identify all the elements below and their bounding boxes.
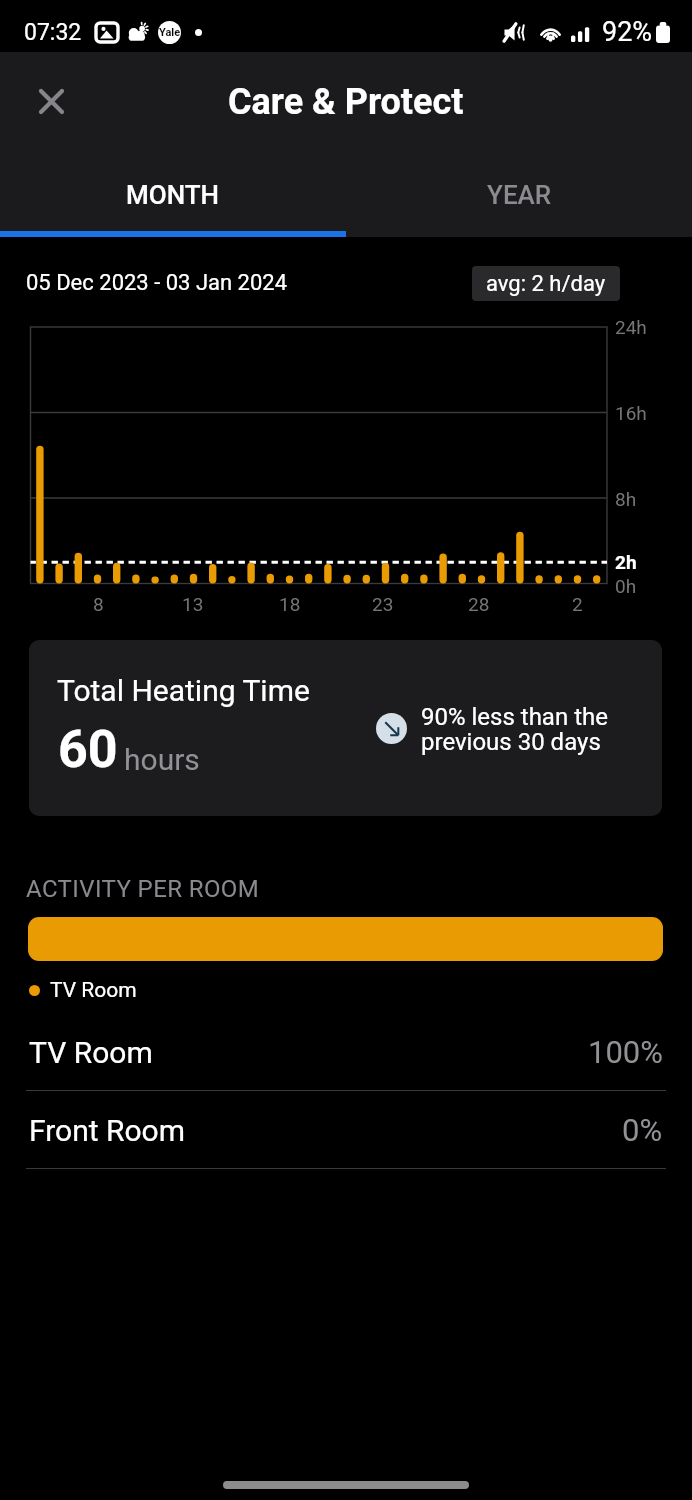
staticText: 0% [622, 1112, 663, 1148]
staticText: previous 30 days [421, 728, 601, 756]
staticText: 100% [588, 1034, 663, 1070]
staticText: YEAR [487, 180, 552, 210]
staticText: ACTIVITY PER ROOM [26, 875, 260, 903]
staticText: Yale [159, 26, 181, 39]
staticText: Care & Protect [228, 81, 464, 123]
staticText: Front Room [29, 1113, 186, 1148]
staticText: 60 [58, 719, 118, 780]
staticText: avg: 2 h/day [486, 271, 606, 297]
button[interactable]: YEAR [346, 160, 692, 230]
staticText: 24h [615, 316, 647, 338]
staticText: TV Room [29, 1035, 153, 1070]
button[interactable]: TV Room [0, 1013, 692, 1091]
staticText: 28 [468, 593, 490, 615]
staticText: 8h [615, 488, 637, 510]
staticText: 92% [602, 16, 653, 48]
staticText: 18 [279, 593, 301, 615]
staticText: 2 [572, 593, 583, 615]
button[interactable]: avg: 2 h/day [472, 266, 620, 301]
staticText: Total Heating Time [57, 673, 310, 708]
staticText: TV Room [50, 978, 137, 1003]
staticText: 8 [93, 593, 104, 615]
staticText: MONTH [126, 180, 220, 210]
staticText: 07:32 [24, 19, 82, 46]
button[interactable]: MONTH [0, 160, 346, 230]
button[interactable]: Front Room [0, 1091, 692, 1169]
staticText: 05 Dec 2023 - 03 Jan 2024 [26, 270, 288, 296]
staticText: 2h [615, 551, 637, 573]
button[interactable]: Close [26, 76, 76, 126]
button[interactable]: Total Heating Time [29, 640, 662, 816]
staticText: 90% less than the [421, 703, 608, 731]
staticText: 0h [615, 575, 637, 597]
staticText: hours [124, 742, 200, 777]
staticText: 13 [182, 593, 204, 615]
staticText: 16h [615, 402, 647, 424]
button[interactable] [28, 917, 663, 961]
staticText: 23 [372, 593, 394, 615]
